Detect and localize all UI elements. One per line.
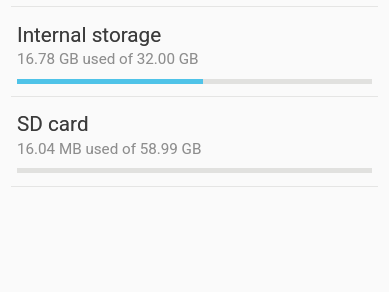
staticText: 16.78 GB used of 32.00 GB [17,50,199,68]
button[interactable]: Internal storage [0,6,389,96]
button[interactable]: SD card [0,96,389,186]
staticText: SD card [17,112,89,136]
staticText: Internal storage [17,23,162,47]
staticText: 16.04 MB used of 58.99 GB [17,140,202,158]
